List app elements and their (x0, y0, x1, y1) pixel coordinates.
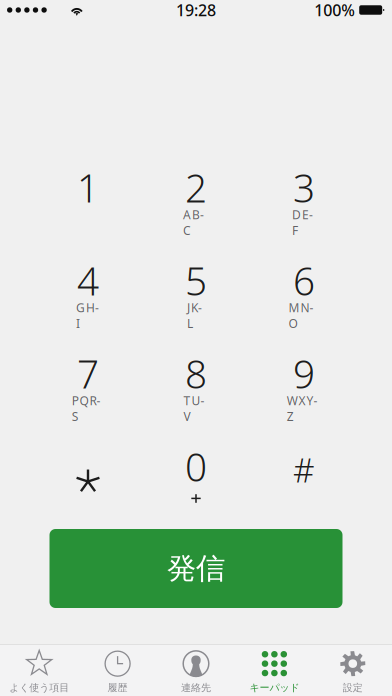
staticText: 2 (185, 162, 207, 213)
staticText: WXYZ (287, 392, 321, 408)
staticText: PQRS (72, 392, 104, 408)
staticText: 0 (185, 441, 207, 492)
button[interactable]: 9 (250, 343, 358, 436)
staticText: # (293, 447, 315, 492)
staticText: ABC (183, 206, 209, 222)
button[interactable]: 2 (142, 157, 250, 250)
button[interactable]: 0 (142, 436, 250, 529)
button[interactable]: 履歴 (78, 644, 157, 696)
button[interactable]: 6 (250, 250, 358, 343)
staticText: 3 (293, 162, 315, 213)
button[interactable]: 3 (250, 157, 358, 250)
staticText: 6 (293, 255, 315, 306)
staticText: よく使う項目 (9, 681, 69, 694)
staticText: 発信 (167, 550, 225, 586)
staticText: 連絡先 (181, 681, 211, 694)
staticText: 9 (293, 348, 315, 399)
button[interactable]: 発信 (49, 529, 342, 608)
staticText: 19:28 (176, 0, 216, 21)
button[interactable]: よく使う項目 (0, 644, 78, 696)
staticText: 7 (77, 348, 99, 399)
button[interactable]: キーパッド (235, 644, 314, 696)
staticText: 8 (185, 348, 207, 399)
staticText: 100% (314, 0, 355, 21)
staticText: キーパッド (249, 681, 299, 694)
button[interactable]: 設定 (314, 644, 392, 696)
button[interactable]: 4 (34, 250, 142, 343)
staticText: 設定 (343, 681, 363, 694)
button[interactable]: # (250, 436, 358, 529)
staticText: 履歴 (108, 681, 128, 694)
staticText: 5 (185, 255, 207, 306)
button[interactable] (34, 436, 142, 529)
button[interactable]: 連絡先 (157, 644, 235, 696)
button[interactable]: 1 (34, 157, 142, 250)
button[interactable]: 8 (142, 343, 250, 436)
staticText: 4 (77, 255, 99, 306)
staticText: TUV (184, 392, 208, 408)
staticText: GHI (76, 299, 100, 315)
staticText: MNO (289, 299, 319, 315)
button[interactable]: 7 (34, 343, 142, 436)
staticText: 1 (77, 162, 99, 213)
staticText: JKL (187, 299, 205, 315)
button[interactable]: 5 (142, 250, 250, 343)
staticText: DEF (292, 206, 316, 222)
